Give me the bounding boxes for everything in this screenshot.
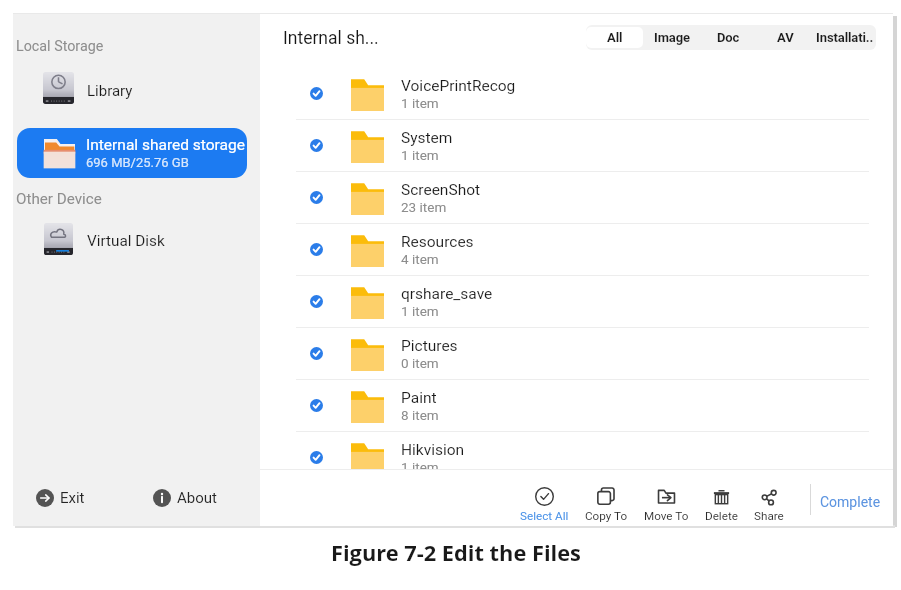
staticText: Pictures <box>401 337 458 355</box>
staticText: Select All <box>520 509 569 523</box>
staticText: Exit <box>60 489 85 507</box>
button[interactable]: Share <box>746 481 792 523</box>
staticText: All <box>607 30 623 45</box>
staticText: Move To <box>644 509 689 523</box>
staticText: Internal shared storage <box>86 136 245 154</box>
staticText: Share <box>754 509 784 523</box>
button[interactable]: Doc <box>700 27 757 48</box>
staticText: 23 item <box>401 199 447 215</box>
staticText: 1 item <box>401 147 439 163</box>
button[interactable]: Pictures <box>260 328 893 379</box>
button[interactable]: Complete <box>820 481 881 523</box>
staticText: Complete <box>820 494 881 510</box>
button[interactable]: Select All <box>512 481 577 523</box>
button[interactable]: Internal shared storage <box>17 128 247 178</box>
button[interactable]: Installati.. <box>814 27 876 48</box>
staticText: Other Device <box>16 190 102 208</box>
staticText: 8 item <box>401 407 439 423</box>
button[interactable]: All <box>586 27 643 48</box>
staticText: 4 item <box>401 251 439 267</box>
staticText: Local Storage <box>16 38 104 55</box>
button[interactable]: qrshare_save <box>260 276 893 327</box>
button[interactable]: Copy To <box>577 481 636 523</box>
button[interactable]: VoicePrintRecog <box>260 68 893 119</box>
staticText: qrshare_save <box>401 285 493 303</box>
button[interactable]: Exit <box>36 485 85 511</box>
button[interactable]: ScreenShot <box>260 172 893 223</box>
staticText: Virtual Disk <box>87 232 165 250</box>
staticText: Hikvision <box>401 441 465 459</box>
button[interactable]: AV <box>757 27 814 48</box>
staticText: Paint <box>401 389 437 407</box>
button[interactable]: About <box>153 485 217 511</box>
staticText: Internal sh... <box>283 28 379 49</box>
staticText: 696 MB/25.76 GB <box>86 155 189 170</box>
staticText: Library <box>87 82 133 100</box>
staticText: ScreenShot <box>401 181 481 199</box>
staticText: Installati.. <box>816 30 874 45</box>
staticText: Figure 7-2 Edit the Files <box>331 538 581 566</box>
staticText: 1 item <box>401 303 439 319</box>
button[interactable]: Library <box>13 66 260 110</box>
staticText: 1 item <box>401 95 439 111</box>
staticText: Image <box>654 30 690 45</box>
staticText: About <box>177 489 217 507</box>
staticText: 1 item <box>401 459 439 471</box>
staticText: Delete <box>705 509 738 523</box>
button[interactable]: Image <box>643 27 700 48</box>
staticText: Copy To <box>585 509 628 523</box>
staticText: AV <box>777 30 794 45</box>
staticText: VoicePrintRecog <box>401 77 516 95</box>
staticText: 0 item <box>401 355 439 371</box>
staticText: System <box>401 129 453 147</box>
button[interactable]: Virtual Disk <box>13 217 260 261</box>
button[interactable]: Resources <box>260 224 893 275</box>
button[interactable]: Move To <box>636 481 697 523</box>
button[interactable]: Paint <box>260 380 893 431</box>
staticText: Doc <box>717 30 740 45</box>
button[interactable]: Delete <box>697 481 746 523</box>
button[interactable]: Hikvision <box>260 432 893 471</box>
staticText: Resources <box>401 233 474 251</box>
button[interactable]: System <box>260 120 893 171</box>
